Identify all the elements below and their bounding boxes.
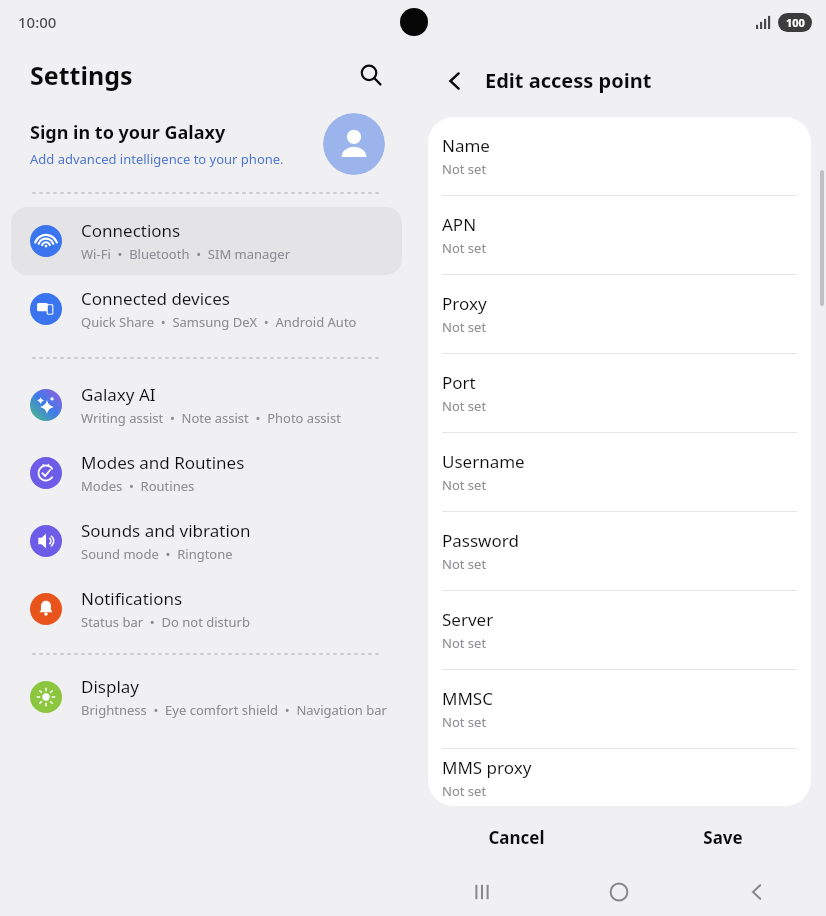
- staticText: Server: [442, 608, 494, 631]
- staticText: Sounds and vibration: [81, 519, 251, 542]
- staticText: Not set: [442, 476, 487, 494]
- staticText: Not set: [442, 634, 487, 652]
- staticText: Sound mode • Ringtone: [81, 545, 233, 563]
- button[interactable]: Cancel: [413, 806, 619, 868]
- button[interactable]: Password: [428, 512, 811, 590]
- staticText: Not set: [442, 782, 487, 800]
- staticText: Not set: [442, 555, 487, 573]
- staticText: APN: [442, 213, 477, 236]
- button[interactable]: Modes and Routines: [0, 439, 413, 507]
- button[interactable]: Username: [428, 433, 811, 511]
- staticText: Name: [442, 134, 490, 157]
- button[interactable]: Recent apps: [413, 868, 550, 916]
- button[interactable]: Search: [349, 53, 393, 97]
- staticText: Sign in to your Galaxy: [30, 120, 226, 145]
- staticText: Save: [703, 826, 743, 849]
- staticText: Wi-Fi • Bluetooth • SIM manager: [81, 245, 291, 263]
- button[interactable]: Back: [688, 868, 826, 916]
- staticText: MMS proxy: [442, 756, 532, 779]
- button[interactable]: Connected devices: [0, 275, 413, 343]
- staticText: Password: [442, 529, 519, 552]
- button[interactable]: Sign in to your Galaxy: [0, 106, 413, 182]
- staticText: Not set: [442, 239, 487, 257]
- staticText: 100: [786, 15, 805, 30]
- staticText: Add advanced intelligence to your phone.: [30, 150, 284, 168]
- button[interactable]: Proxy: [428, 275, 811, 353]
- button[interactable]: Connections: [11, 207, 402, 275]
- staticText: Modes • Routines: [81, 477, 195, 495]
- staticText: Notifications: [81, 587, 183, 610]
- staticText: Username: [442, 450, 525, 473]
- staticText: Cancel: [488, 826, 545, 849]
- staticText: Connections: [81, 219, 181, 242]
- staticText: Connected devices: [81, 287, 231, 310]
- staticText: Not set: [442, 397, 487, 415]
- button[interactable]: APN: [428, 196, 811, 274]
- staticText: Not set: [442, 160, 487, 178]
- staticText: Proxy: [442, 292, 487, 315]
- button[interactable]: Back: [433, 59, 477, 103]
- staticText: Status bar • Do not disturb: [81, 613, 250, 631]
- button[interactable]: MMS proxy: [428, 749, 811, 806]
- staticText: Writing assist • Note assist • Photo ass…: [81, 409, 341, 427]
- staticText: Brightness • Eye comfort shield • Naviga…: [81, 701, 387, 719]
- button[interactable]: Port: [428, 354, 811, 432]
- staticText: Port: [442, 371, 476, 394]
- button[interactable]: Home: [550, 868, 688, 916]
- button[interactable]: Name: [428, 117, 811, 195]
- button[interactable]: Save: [619, 806, 826, 868]
- staticText: Edit access point: [485, 67, 652, 94]
- button[interactable]: Sounds and vibration: [0, 507, 413, 575]
- staticText: Quick Share • Samsung DeX • Android Auto: [81, 313, 357, 331]
- staticText: Not set: [442, 318, 487, 336]
- button[interactable]: Server: [428, 591, 811, 669]
- button[interactable]: MMSC: [428, 670, 811, 748]
- staticText: Modes and Routines: [81, 451, 245, 474]
- staticText: Galaxy AI: [81, 383, 156, 406]
- button[interactable]: Galaxy AI: [0, 371, 413, 439]
- staticText: 10:00: [18, 12, 57, 32]
- staticText: Settings: [30, 58, 133, 92]
- staticText: MMSC: [442, 687, 493, 710]
- staticText: Not set: [442, 713, 487, 731]
- button[interactable]: Display: [0, 663, 413, 731]
- button[interactable]: Notifications: [0, 575, 413, 643]
- staticText: Display: [81, 675, 139, 698]
